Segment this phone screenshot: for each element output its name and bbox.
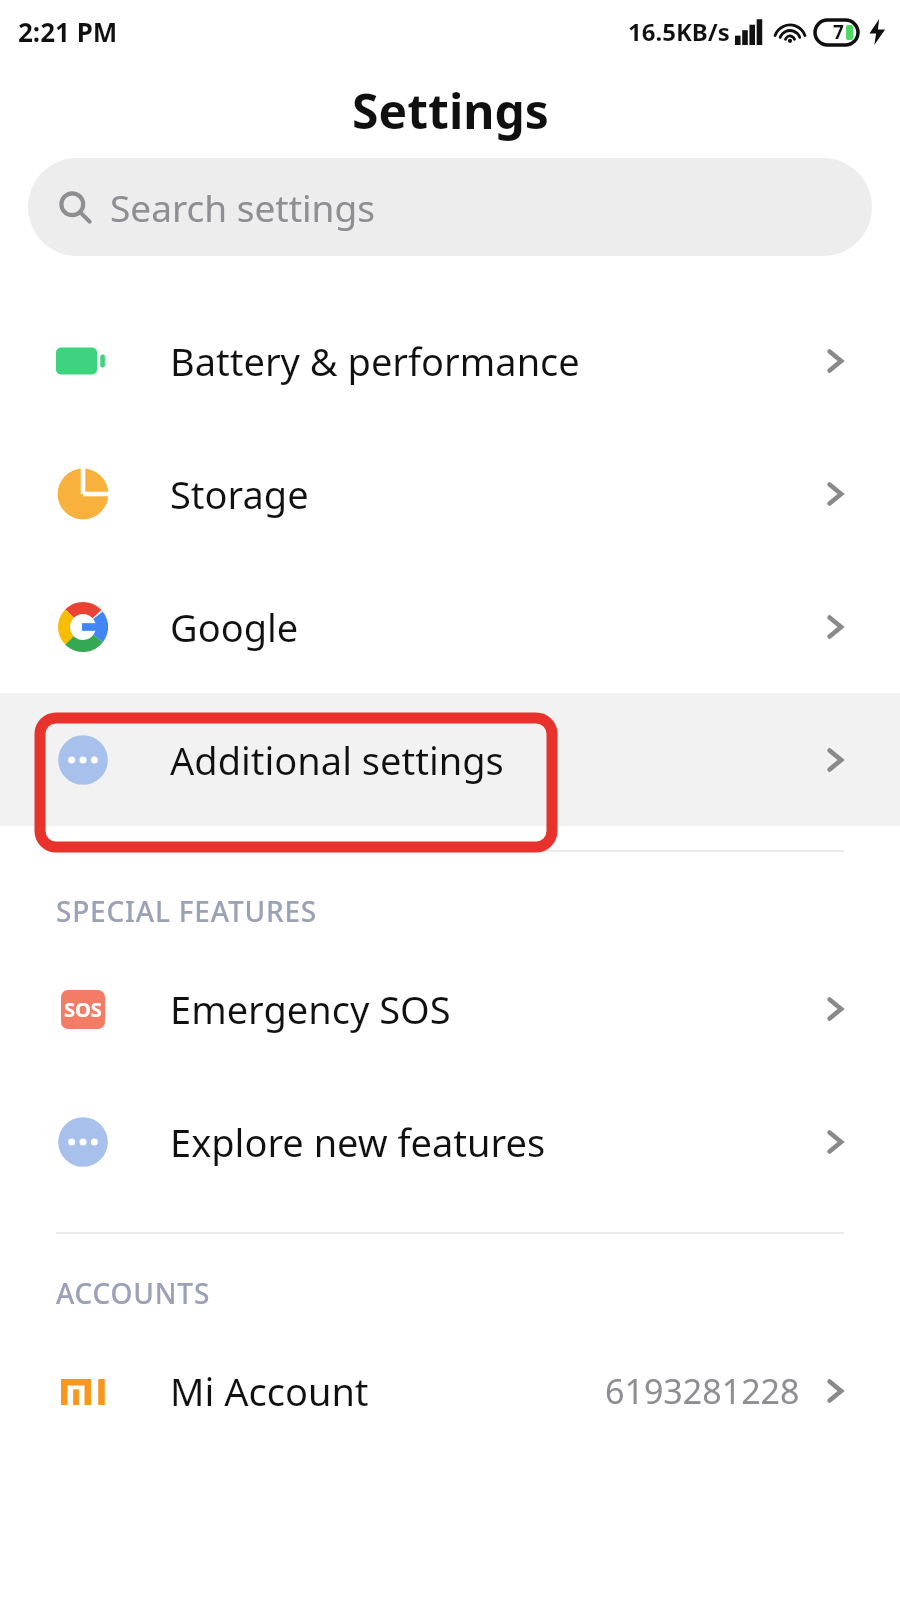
staticText: Additional settings: [170, 734, 504, 786]
other: Open Emergency SOS: [818, 992, 852, 1026]
staticText: 2:21 PM: [18, 14, 118, 49]
other: Open Additional settings: [818, 743, 852, 777]
button[interactable]: Search settings: [28, 158, 872, 256]
staticText: SPECIAL FEATURES: [56, 892, 317, 930]
button[interactable]: SOS: [0, 942, 900, 1075]
staticText: 7: [833, 19, 844, 45]
other: Open Storage: [818, 477, 852, 511]
staticText: Explore new features: [170, 1116, 546, 1168]
button[interactable]: Additional settings: [0, 693, 900, 826]
other: Open Explore new features: [818, 1125, 852, 1159]
button[interactable]: Battery & performance: [0, 294, 900, 427]
other: Open Google: [818, 610, 852, 644]
staticText: 6193281228: [605, 1368, 800, 1414]
staticText: Emergency SOS: [170, 983, 451, 1035]
button[interactable]: Mi Account: [0, 1324, 900, 1457]
staticText: Mi Account: [170, 1365, 369, 1417]
staticText: SOS: [64, 996, 102, 1023]
staticText: ACCOUNTS: [56, 1274, 211, 1312]
other: Open Battery & performance: [818, 344, 852, 378]
staticText: Battery & performance: [170, 335, 580, 387]
staticText: 16.5KB/s: [628, 15, 730, 48]
button[interactable]: Google: [0, 560, 900, 693]
button[interactable]: Storage: [0, 427, 900, 560]
staticText: Search settings: [110, 182, 375, 232]
staticText: Settings: [352, 78, 549, 143]
staticText: Google: [170, 601, 299, 653]
button[interactable]: Explore new features: [0, 1075, 900, 1208]
other: Open Mi Account: [818, 1374, 852, 1408]
staticText: Storage: [170, 468, 309, 520]
